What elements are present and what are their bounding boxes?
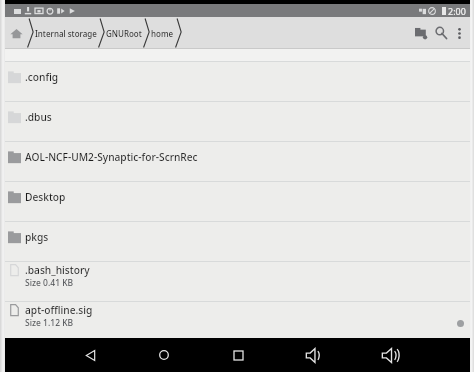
button[interactable]: pkgs	[5, 222, 470, 261]
button[interactable]: Volume down	[297, 338, 331, 372]
button[interactable]: Volume up	[373, 338, 407, 372]
button[interactable]: New folder	[409, 17, 432, 49]
button[interactable]: .bash_history	[5, 262, 470, 301]
staticText: 2:00	[448, 5, 466, 17]
staticText: apt-offline.sig	[25, 303, 93, 317]
button[interactable]: Scroll indicator	[457, 320, 464, 327]
staticText: home	[151, 28, 174, 39]
staticText: Size 1.12 KB	[25, 317, 74, 329]
staticText: Size 0.41 KB	[25, 277, 74, 289]
button[interactable]: Recents	[221, 338, 255, 372]
staticText: GNURoot	[106, 28, 142, 39]
button[interactable]: apt-offline.sig	[5, 302, 470, 338]
button[interactable]: Home	[5, 17, 27, 49]
staticText: Internal storage	[35, 28, 97, 39]
button[interactable]: home	[150, 17, 175, 49]
staticText: AOL-NCF-UM2-Synaptic-for-ScrnRec	[25, 150, 198, 164]
staticText: .config	[25, 70, 59, 84]
button[interactable]: More options	[449, 17, 470, 49]
button[interactable]: Internal storage	[34, 17, 98, 49]
button[interactable]: Desktop	[5, 182, 470, 221]
button[interactable]: Search	[432, 17, 449, 49]
staticText: Desktop	[25, 190, 66, 204]
staticText: pkgs	[25, 230, 49, 244]
staticText: .dbus	[25, 110, 52, 124]
button[interactable]: GNURoot	[105, 17, 143, 49]
staticText: .bash_history	[25, 263, 90, 277]
button[interactable]: AOL-NCF-UM2-Synaptic-for-ScrnRec	[5, 142, 470, 181]
button[interactable]: Back	[73, 338, 107, 372]
button[interactable]: Home	[147, 338, 181, 372]
button[interactable]: .config	[5, 62, 470, 101]
button[interactable]: .dbus	[5, 102, 470, 141]
